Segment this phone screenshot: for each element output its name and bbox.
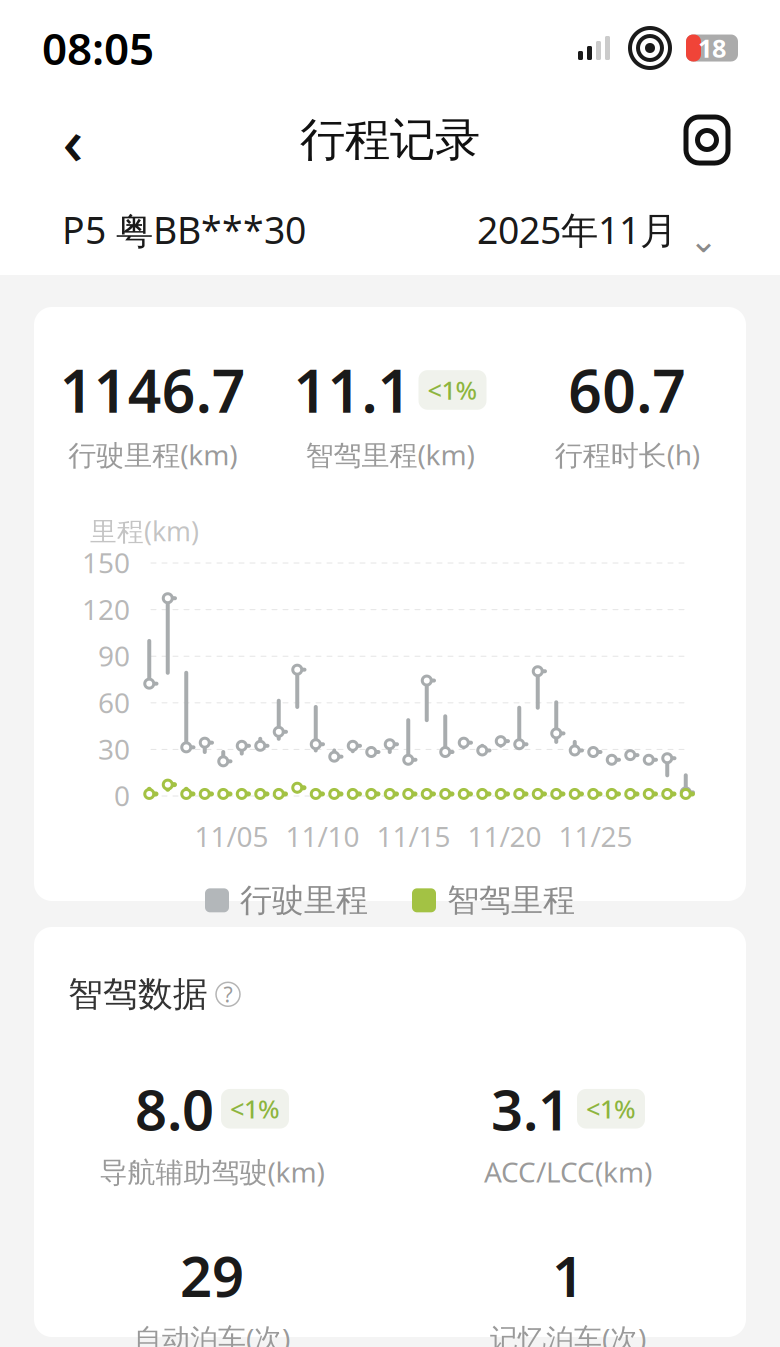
- staticText: 导航辅助驾驶(km): [99, 1153, 324, 1190]
- staticText: 8.0: [135, 1072, 214, 1146]
- staticText: 智驾数据: [68, 973, 208, 1016]
- staticText: 11/20: [467, 817, 541, 855]
- staticText: 2025年11月: [477, 205, 677, 254]
- staticText: 18: [698, 31, 726, 65]
- staticText: 行驶里程(km): [68, 436, 237, 473]
- button[interactable]: 关于智驾数据: [216, 982, 240, 1006]
- staticText: 08:05: [42, 19, 154, 77]
- button[interactable]: 2025年11月: [477, 195, 718, 264]
- staticText: 智驾里程: [447, 881, 575, 920]
- staticText: ?: [223, 980, 232, 1008]
- staticText: 11.1: [293, 351, 411, 429]
- staticText: 60: [98, 684, 130, 721]
- staticText: 里程(km): [90, 513, 199, 548]
- button[interactable]: 设置: [676, 109, 738, 171]
- staticText: 30: [98, 730, 130, 767]
- button[interactable]: 返回: [42, 109, 104, 171]
- staticText: ⌄: [689, 220, 718, 260]
- staticText: P5 粤BB***30: [62, 205, 306, 254]
- staticText: 1: [552, 1238, 584, 1312]
- staticText: 150: [82, 544, 130, 581]
- staticText: 自动泊车(次): [134, 1319, 290, 1347]
- staticText: 记忆泊车(次): [490, 1319, 646, 1347]
- staticText: 11/05: [194, 817, 268, 855]
- staticText: 120: [82, 590, 130, 628]
- staticText: 11/25: [558, 817, 632, 855]
- staticText: 3.1: [491, 1072, 570, 1146]
- staticText: 0: [114, 777, 130, 814]
- staticText: <1%: [230, 1092, 280, 1125]
- staticText: 60.7: [568, 351, 686, 429]
- staticText: 1146.7: [60, 351, 246, 429]
- staticText: <1%: [427, 373, 477, 407]
- staticText: 行驶里程: [240, 881, 368, 920]
- staticText: <1%: [586, 1092, 636, 1125]
- staticText: 29: [180, 1238, 244, 1312]
- staticText: 90: [98, 637, 130, 674]
- staticText: 行程时长(h): [555, 436, 700, 473]
- staticText: 11/15: [376, 817, 450, 855]
- staticText: 行程记录: [300, 112, 480, 168]
- staticText: 智驾里程(km): [305, 436, 474, 473]
- staticText: 11/10: [285, 817, 359, 855]
- staticText: ‹: [62, 97, 83, 182]
- staticText: ACC/LCC(km): [484, 1153, 652, 1190]
